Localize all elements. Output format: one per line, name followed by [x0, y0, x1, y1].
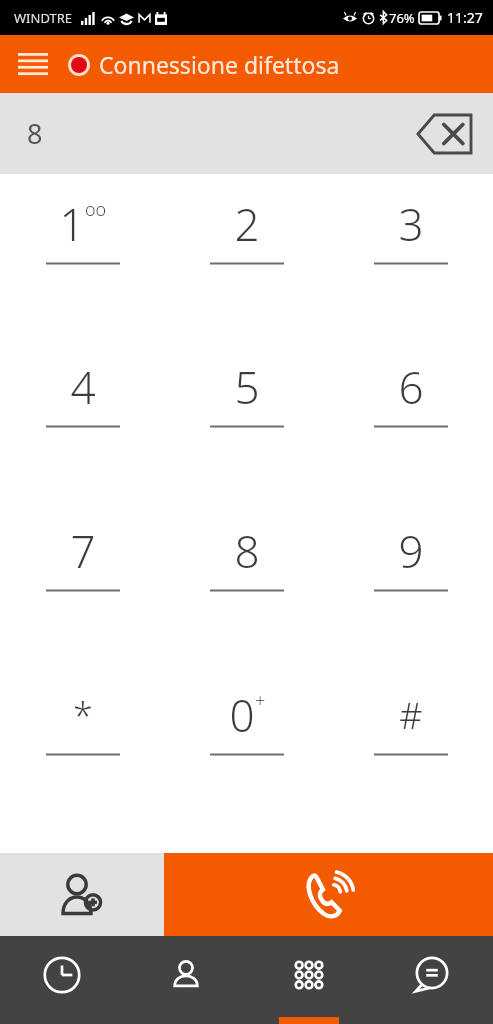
button[interactable]: 5: [165, 355, 329, 519]
staticText: 8: [234, 521, 260, 581]
staticText: 3: [398, 194, 424, 254]
staticText: oo: [85, 197, 107, 222]
button[interactable]: 8: [165, 519, 329, 683]
button[interactable]: 6: [329, 355, 493, 519]
button[interactable]: 1: [0, 192, 165, 355]
button[interactable]: 9: [329, 519, 493, 683]
staticText: 8: [27, 115, 43, 152]
button[interactable]: Add contact: [0, 853, 164, 936]
button[interactable]: Messages: [370, 936, 493, 1024]
button[interactable]: Call: [164, 853, 493, 936]
button[interactable]: 7: [0, 519, 165, 683]
staticText: 4: [70, 357, 96, 417]
button[interactable]: Contacts: [124, 936, 247, 1024]
button[interactable]: Keypad: [247, 936, 370, 1024]
staticText: Connessione difettosa: [99, 49, 340, 80]
staticText: 1: [59, 194, 85, 254]
button[interactable]: 0: [165, 683, 329, 847]
staticText: *: [73, 691, 93, 740]
staticText: 76%: [389, 9, 415, 27]
staticText: #: [399, 691, 423, 740]
staticText: 5: [234, 357, 260, 417]
button[interactable]: 3: [329, 192, 493, 355]
staticText: 11:27: [447, 8, 483, 27]
staticText: 9: [398, 521, 424, 581]
staticText: 0: [229, 685, 255, 745]
button[interactable]: Menu: [8, 39, 58, 89]
staticText: 7: [70, 521, 96, 581]
button[interactable]: Recents: [0, 936, 124, 1024]
staticText: WINDTRE: [14, 9, 73, 27]
staticText: 2: [234, 194, 260, 254]
button[interactable]: 4: [0, 355, 165, 519]
button[interactable]: 2: [165, 192, 329, 355]
staticText: +: [255, 688, 266, 713]
staticText: 6: [398, 357, 424, 417]
button[interactable]: #: [329, 683, 493, 847]
button[interactable]: *: [0, 683, 165, 847]
button[interactable]: Backspace: [403, 93, 493, 174]
